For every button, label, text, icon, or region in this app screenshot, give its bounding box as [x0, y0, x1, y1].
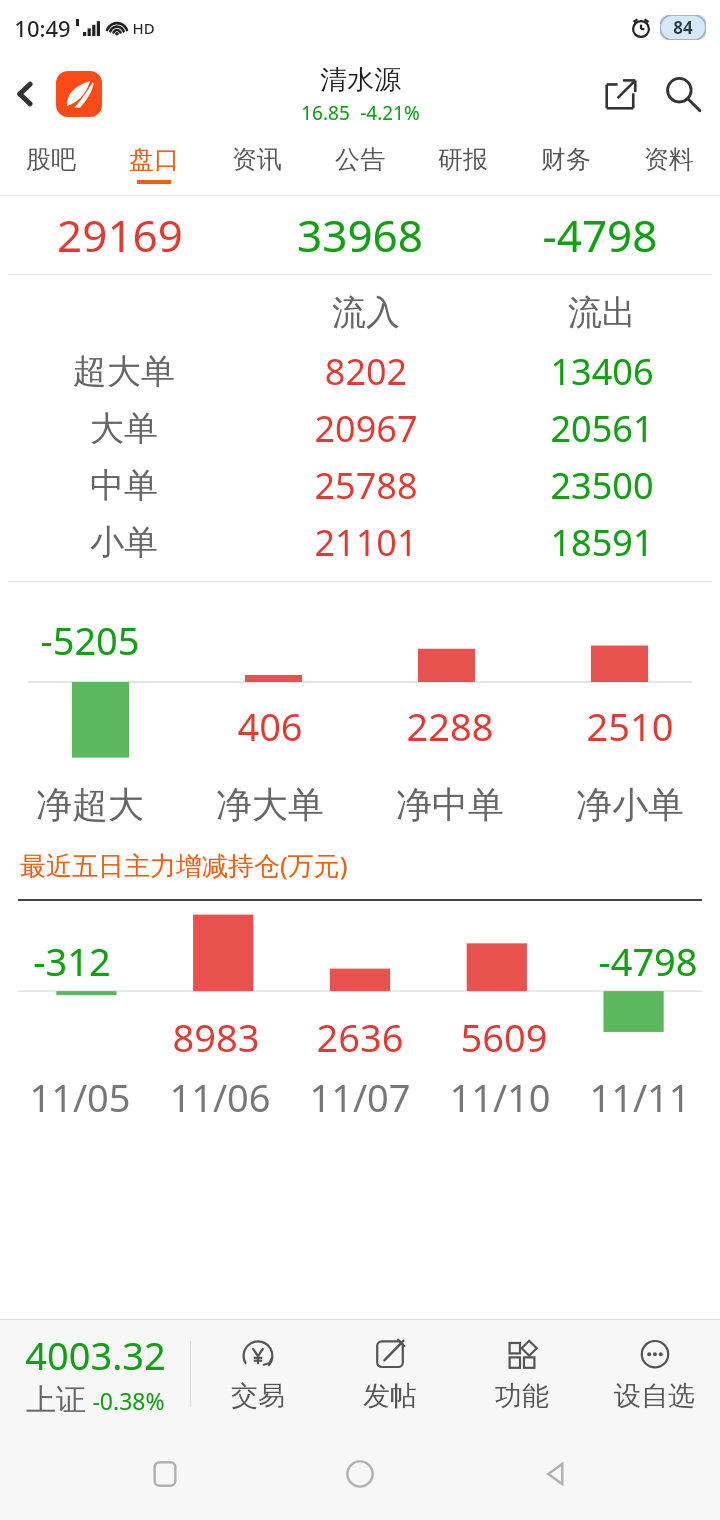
staticText: 流出 [484, 291, 720, 334]
staticText: HD [132, 18, 155, 38]
staticText: 13406 [484, 347, 720, 396]
staticText: 资料 [644, 144, 694, 175]
button[interactable]: 资料 [617, 133, 720, 195]
staticText: -312 [0, 935, 144, 987]
staticText: 最近五日主力增减持仓(万元) [20, 847, 348, 883]
staticText: 20967 [248, 404, 484, 453]
button[interactable]: 小单 [0, 514, 720, 571]
staticText: 11/11 [589, 1071, 691, 1123]
staticText: 11/10 [449, 1071, 551, 1123]
staticText: 23500 [484, 461, 720, 510]
staticText: 财务 [541, 144, 591, 175]
staticText: 研报 [438, 144, 488, 175]
staticText: -0.38% [92, 1385, 165, 1416]
button[interactable]: 中单 [0, 457, 720, 514]
staticText: 2288 [360, 700, 540, 752]
staticText: -4798 [480, 205, 720, 265]
staticText: 8202 [248, 347, 484, 396]
button[interactable]: 设自选 [588, 1320, 720, 1428]
staticText: 清水源 [320, 63, 401, 97]
button[interactable]: 功能 [456, 1320, 588, 1428]
staticText: 股吧 [26, 144, 76, 175]
staticText: 406 [180, 700, 360, 752]
button[interactable]: 公告 [308, 133, 411, 195]
button[interactable]: Recents [135, 1444, 195, 1504]
button[interactable]: Share [592, 65, 650, 123]
button[interactable]: Back [0, 64, 52, 124]
button[interactable]: 研报 [411, 133, 514, 195]
button[interactable]: 发帖 [324, 1320, 456, 1428]
staticText: -5205 [0, 614, 180, 666]
button[interactable]: Search [650, 62, 714, 126]
staticText: 4003.32 [25, 1329, 166, 1381]
staticText: 2510 [540, 700, 720, 752]
staticText: 盘口 [129, 144, 179, 175]
button[interactable]: 4003.32 [0, 1320, 190, 1428]
staticText: 5609 [432, 1011, 576, 1063]
staticText: -4798 [576, 935, 720, 987]
staticText: 净中单 [396, 782, 504, 827]
staticText: 11/06 [169, 1071, 271, 1123]
staticText: 净小单 [576, 782, 684, 827]
staticText: 2636 [288, 1011, 432, 1063]
staticText: 20561 [484, 404, 720, 453]
staticText: 交易 [231, 1379, 285, 1413]
staticText: 中单 [0, 464, 248, 507]
staticText: 功能 [495, 1379, 549, 1413]
button[interactable]: Back [525, 1444, 585, 1504]
staticText: 25788 [248, 461, 484, 510]
button[interactable]: 交易 [191, 1320, 324, 1428]
button[interactable]: 超大单 [0, 343, 720, 400]
button[interactable]: 股吧 [0, 133, 102, 195]
button[interactable]: App home [52, 67, 106, 121]
staticText: 16.85 [301, 100, 350, 126]
staticText: 超大单 [0, 350, 248, 393]
staticText: 上证 [26, 1381, 86, 1419]
staticText: 公告 [335, 144, 385, 175]
staticText: 资讯 [232, 144, 282, 175]
button[interactable]: Home [330, 1444, 390, 1504]
button[interactable]: 财务 [514, 133, 617, 195]
staticText: 流入 [248, 291, 484, 334]
staticText: 8983 [144, 1011, 288, 1063]
staticText: 小单 [0, 521, 248, 564]
staticText: -4.21% [360, 100, 420, 126]
staticText: 设自选 [614, 1379, 695, 1413]
staticText: 11/05 [29, 1071, 131, 1123]
staticText: 21101 [248, 518, 484, 567]
staticText: 大单 [0, 407, 248, 450]
staticText: 发帖 [363, 1379, 417, 1413]
button[interactable]: 资讯 [205, 133, 308, 195]
staticText: 净超大 [36, 782, 144, 827]
staticText: 10:49 [14, 13, 71, 43]
staticText: 净大单 [216, 782, 324, 827]
staticText: 33968 [240, 205, 480, 265]
staticText: 18591 [484, 518, 720, 567]
button[interactable]: 大单 [0, 400, 720, 457]
staticText: 29169 [0, 205, 240, 265]
button[interactable]: 盘口 [102, 133, 205, 195]
staticText: 11/07 [309, 1071, 411, 1123]
staticText: 84 [673, 16, 693, 39]
